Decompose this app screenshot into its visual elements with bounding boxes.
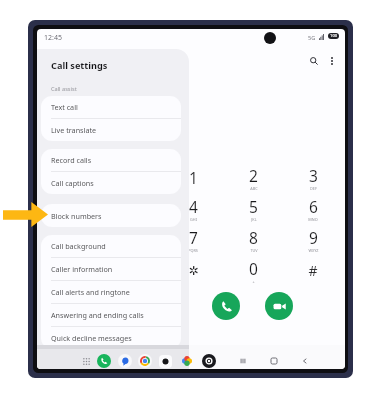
staticText: 100 [330, 33, 338, 39]
staticText: 5G [308, 34, 316, 42]
staticText: Caller information [51, 264, 113, 274]
staticText: Live translate [51, 125, 97, 135]
button[interactable]: Settings [202, 354, 216, 368]
staticText: Call settings [51, 59, 108, 72]
button[interactable]: Camera [159, 355, 172, 368]
button[interactable]: 5 [223, 193, 283, 224]
button[interactable]: Phone [97, 354, 111, 368]
button[interactable]: 3 [283, 162, 343, 193]
button[interactable]: Video call [265, 292, 293, 320]
button[interactable]: Back [299, 355, 311, 367]
staticText: GHI [190, 217, 197, 222]
button[interactable]: 2 [223, 162, 283, 193]
button[interactable]: 1 [163, 162, 223, 193]
staticText: Block numbers [51, 211, 102, 221]
staticText: Answering and ending calls [51, 310, 144, 320]
staticText: Call assist [51, 85, 77, 93]
button[interactable]: Call captions [41, 172, 181, 194]
button[interactable]: 0 [223, 255, 283, 286]
button[interactable]: 9 [283, 224, 343, 255]
button[interactable]: ✲ [163, 255, 223, 286]
button[interactable]: Home [268, 355, 280, 367]
staticText: JKL [251, 217, 257, 222]
button[interactable]: Quick decline messages [41, 327, 181, 346]
button[interactable]: Caller information [41, 258, 181, 281]
staticText: 3 [309, 165, 318, 186]
staticText: 6 [309, 196, 318, 217]
button[interactable]: Live translate [41, 119, 181, 141]
button[interactable]: Search [307, 54, 320, 67]
staticText: Record calls [51, 155, 92, 165]
button[interactable]: Text call [41, 96, 181, 119]
staticText: 5 [249, 196, 258, 217]
staticText: MNO [308, 217, 318, 222]
staticText: PQRS [188, 248, 198, 253]
staticText: WXYZ [308, 248, 319, 253]
button[interactable]: Call background [41, 235, 181, 258]
staticText: + [252, 279, 255, 284]
button[interactable]: Block numbers [41, 204, 181, 227]
button[interactable]: Photos [180, 354, 194, 368]
staticText: TUV [250, 248, 258, 253]
button[interactable]: Chrome [138, 354, 152, 368]
staticText: Call background [51, 241, 106, 251]
staticText: 0 [249, 258, 258, 279]
staticText: Call alerts and ringtone [51, 287, 130, 297]
staticText: 2 [249, 165, 258, 186]
staticText: 12:45 [44, 33, 62, 43]
staticText: # [308, 261, 318, 280]
staticText: Call captions [51, 178, 94, 188]
button[interactable]: # [283, 255, 343, 286]
button[interactable]: 6 [283, 193, 343, 224]
button[interactable]: 8 [223, 224, 283, 255]
staticText: 4 [189, 196, 198, 217]
button[interactable]: 7 [163, 224, 223, 255]
button[interactable]: Recent apps [237, 355, 249, 367]
staticText: ✲ [188, 264, 199, 278]
staticText: 8 [249, 227, 258, 248]
button[interactable]: Record calls [41, 149, 181, 172]
staticText: DEF [310, 186, 317, 191]
button[interactable]: Messages [118, 354, 132, 368]
staticText: 9 [309, 227, 318, 248]
staticText: Text call [51, 102, 78, 112]
button[interactable]: More options [325, 54, 338, 67]
staticText: ABC [250, 186, 258, 191]
button[interactable]: All apps [82, 357, 91, 366]
staticText: 1 [189, 167, 198, 188]
button[interactable]: Answering and ending calls [41, 304, 181, 327]
staticText: Quick decline messages [51, 333, 132, 343]
button[interactable]: Call alerts and ringtone [41, 281, 181, 304]
button[interactable]: 4 [163, 193, 223, 224]
button[interactable]: Call [212, 292, 240, 320]
staticText: 7 [189, 227, 198, 248]
